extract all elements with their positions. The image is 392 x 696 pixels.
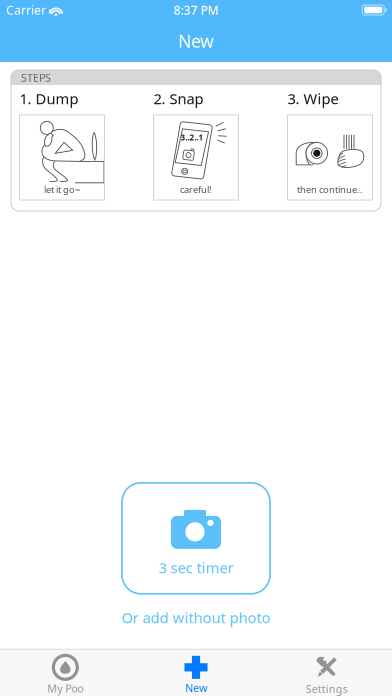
staticText: 3..2..1 (180, 132, 203, 143)
staticText: then continue.. (297, 183, 363, 196)
staticText: 3. Wipe (287, 89, 338, 108)
staticText: My Poo (47, 681, 83, 695)
button[interactable]: Or add without photo (101, 594, 290, 633)
staticText: careful! (180, 183, 212, 196)
button[interactable]: 3 sec timer (122, 483, 270, 594)
button[interactable]: My Poo (0, 655, 131, 695)
staticText: 8:37 PM (173, 2, 218, 18)
staticText: STEPS (21, 70, 51, 85)
staticText: Carrier (6, 2, 46, 18)
staticText: Or add without photo (121, 608, 270, 627)
button[interactable]: Settings (261, 655, 392, 696)
staticText: New (185, 681, 207, 695)
staticText: Settings (306, 682, 348, 696)
staticText: New (178, 29, 214, 52)
button[interactable]: New (131, 656, 261, 695)
staticText: 3 sec timer (158, 558, 233, 577)
staticText: let it go~ (44, 183, 80, 196)
staticText: 1. Dump (19, 89, 78, 108)
staticText: 2. Snap (153, 89, 203, 108)
